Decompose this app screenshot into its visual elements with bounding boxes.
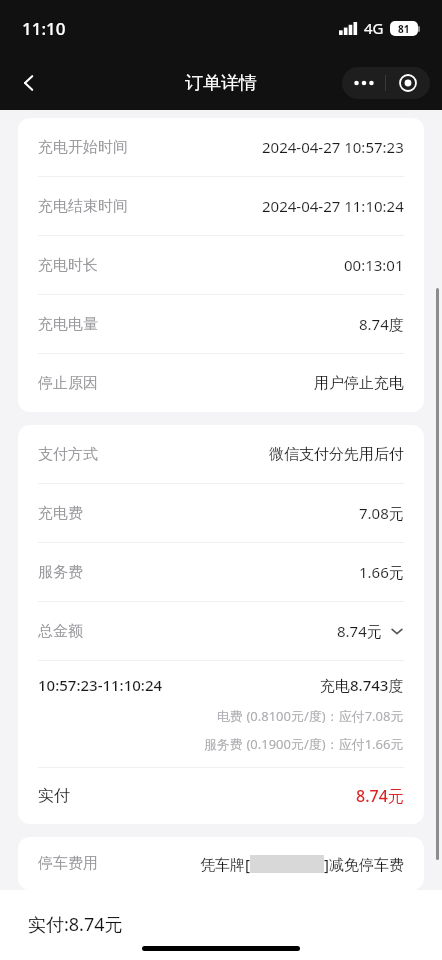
staticText: 充电电量 bbox=[38, 315, 98, 334]
button[interactable]: Back bbox=[6, 60, 52, 106]
button[interactable]: 充电费 bbox=[18, 484, 424, 542]
staticText: 实付 bbox=[38, 786, 70, 806]
staticText: 11:10 bbox=[22, 17, 66, 40]
staticText: 支付方式 bbox=[38, 445, 98, 464]
button[interactable]: 服务费 bbox=[18, 543, 424, 601]
staticText: 电费 (0.8100元/度)：应付7.08元 bbox=[217, 707, 404, 725]
button[interactable]: 停止原因 bbox=[18, 354, 424, 412]
button[interactable]: Close bbox=[386, 67, 430, 99]
staticText: 充电开始时间 bbox=[38, 138, 128, 157]
staticText: 10:57:23-11:10:24 bbox=[38, 675, 163, 695]
staticText: 服务费 (0.1900元/度)：应付1.66元 bbox=[204, 735, 404, 753]
staticText: 微信支付分先用后付 bbox=[269, 445, 404, 464]
staticText: 8.74元 bbox=[356, 785, 404, 807]
staticText: ]减免停车费 bbox=[324, 854, 404, 874]
staticText: 4G bbox=[364, 18, 384, 38]
button[interactable]: 充电结束时间 bbox=[18, 177, 424, 235]
button[interactable]: 总金额 bbox=[18, 602, 424, 660]
staticText: 充电费 bbox=[38, 504, 83, 523]
button[interactable]: 支付方式 bbox=[18, 425, 424, 483]
staticText: 81 bbox=[398, 22, 410, 36]
staticText: 8.74元 bbox=[337, 621, 382, 641]
staticText: 充电时长 bbox=[38, 256, 98, 275]
button[interactable]: More bbox=[342, 67, 385, 99]
staticText: 8.74度 bbox=[359, 314, 404, 334]
staticText: 用户停止充电 bbox=[314, 374, 404, 393]
button[interactable]: 实付 bbox=[18, 768, 424, 824]
staticText: 充电8.743度 bbox=[320, 675, 404, 695]
staticText: 停车费用 bbox=[38, 854, 98, 873]
button[interactable]: 充电电量 bbox=[18, 295, 424, 353]
staticText: 停止原因 bbox=[38, 374, 98, 393]
staticText: 凭车牌[ bbox=[200, 854, 250, 874]
staticText: 总金额 bbox=[38, 622, 83, 641]
staticText: 00:13:01 bbox=[344, 255, 404, 275]
staticText: 2024-04-27 10:57:23 bbox=[262, 137, 404, 157]
staticText: 7.08元 bbox=[359, 503, 404, 523]
staticText: 充电结束时间 bbox=[38, 197, 128, 216]
staticText: 服务费 bbox=[38, 563, 83, 582]
staticText: 2024-04-27 11:10:24 bbox=[262, 196, 404, 216]
button[interactable]: 充电时长 bbox=[18, 236, 424, 294]
staticText: 实付:8.74元 bbox=[28, 912, 123, 937]
staticText: 订单详情 bbox=[185, 72, 257, 95]
staticText: 1.66元 bbox=[359, 562, 404, 582]
button[interactable]: 充电开始时间 bbox=[18, 118, 424, 176]
button[interactable]: 停车费用 bbox=[18, 837, 424, 890]
